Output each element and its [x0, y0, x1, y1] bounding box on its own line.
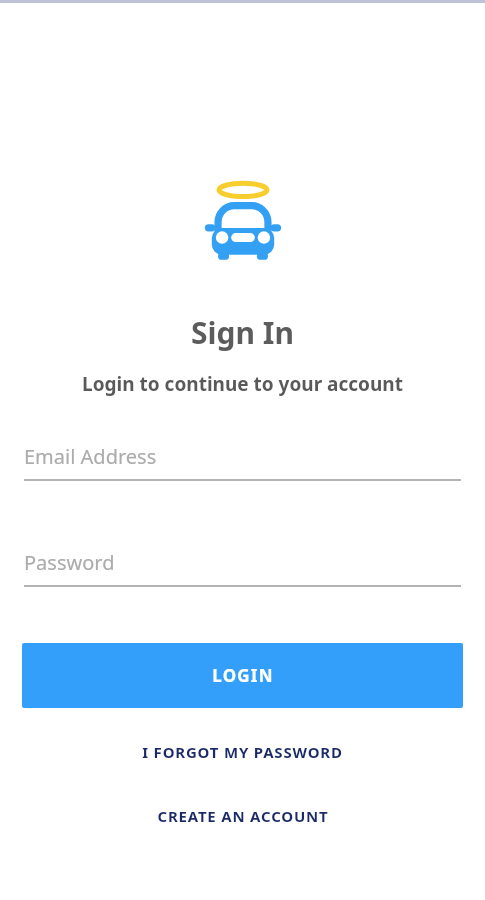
staticText: Password: [24, 549, 115, 576]
staticText: I FORGOT MY PASSWORD: [142, 742, 343, 762]
button[interactable]: Email Address: [24, 443, 461, 481]
other: App logo: car with halo: [195, 182, 291, 268]
button[interactable]: Password: [24, 549, 461, 587]
button[interactable]: CREATE AN ACCOUNT: [0, 794, 485, 838]
staticText: Sign In: [191, 312, 294, 353]
button[interactable]: I FORGOT MY PASSWORD: [0, 730, 485, 774]
staticText: Email Address: [24, 443, 157, 470]
staticText: LOGIN: [212, 664, 274, 687]
button[interactable]: LOGIN: [22, 643, 463, 708]
staticText: Login to continue to your account: [82, 371, 403, 397]
staticText: CREATE AN ACCOUNT: [157, 806, 329, 826]
